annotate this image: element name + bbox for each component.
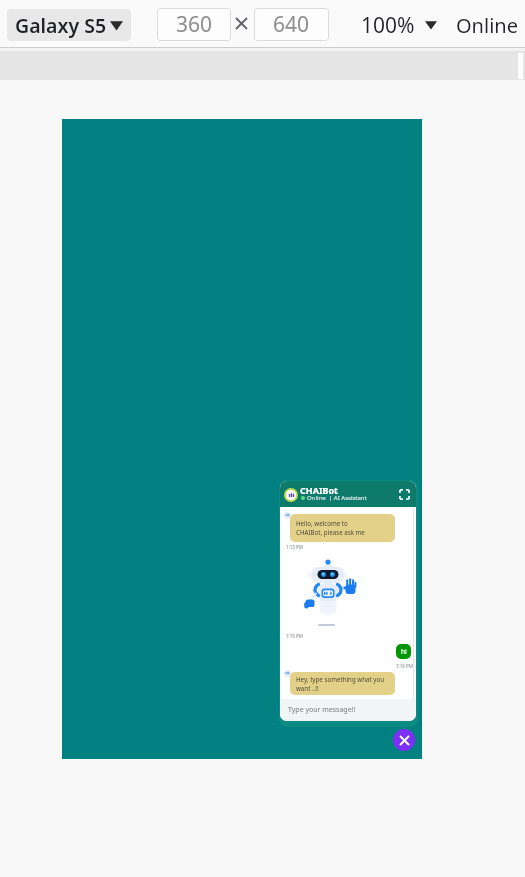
button[interactable]: Online <box>452 9 522 41</box>
staticText: Hello, welcome to CHAIBot, please ask me <box>296 519 365 537</box>
staticText: | AI Assistant <box>329 494 367 502</box>
button[interactable]: 640 <box>254 8 329 41</box>
staticText: Galaxy S5 <box>15 12 107 39</box>
staticText: Hey, type something what you want ..!! <box>296 675 385 693</box>
button[interactable]: 100% <box>357 9 441 41</box>
button[interactable]: Type your message!! <box>280 699 416 721</box>
staticText: 7:15 PM <box>286 633 303 639</box>
staticText: 7:16 PM <box>396 663 413 669</box>
staticText: 360 <box>176 10 213 39</box>
button[interactable]: Close chat <box>393 729 415 751</box>
other: by <box>236 18 249 31</box>
button[interactable]: Galaxy S5 <box>7 9 131 41</box>
other: by <box>236 18 247 29</box>
staticText: Online <box>456 12 518 39</box>
staticText: 100% <box>361 11 415 40</box>
staticText: 640 <box>273 10 310 39</box>
staticText: Online <box>307 494 326 502</box>
staticText: CHAIBot <box>300 484 338 496</box>
button[interactable]: CHAIBot <box>280 481 416 507</box>
staticText: hi <box>401 647 407 656</box>
staticText: 1:13 PM <box>286 544 303 550</box>
button[interactable]: 360 <box>157 8 231 41</box>
button[interactable]: Expand chat <box>399 489 410 500</box>
staticText: Type your message!! <box>288 705 356 715</box>
